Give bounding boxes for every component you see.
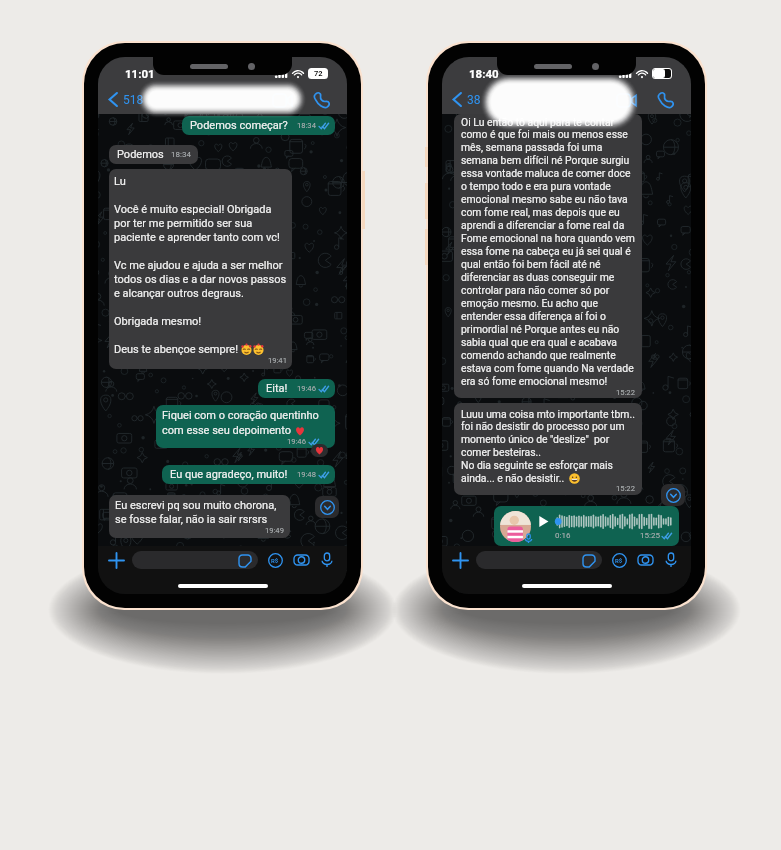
staticText: 19:41 bbox=[268, 356, 287, 365]
staticText: 19:46 bbox=[297, 384, 316, 393]
staticText: Eita! bbox=[266, 382, 288, 395]
staticText: com esse seu depoimento bbox=[162, 424, 291, 437]
button[interactable]: Attach bbox=[450, 550, 470, 570]
button[interactable]: Scroll to bottom bbox=[315, 496, 339, 518]
staticText: Obrigada mesmo! bbox=[114, 315, 202, 328]
staticText: 38 bbox=[467, 93, 481, 107]
staticText: 15:25 bbox=[640, 531, 660, 540]
staticText: 19:49 bbox=[265, 526, 284, 535]
staticText: R$ bbox=[615, 557, 623, 564]
staticText: Deus te abençoe sempre! bbox=[114, 343, 238, 356]
staticText: Vc me ajudou e ajuda a ser melhor todos … bbox=[114, 259, 287, 300]
staticText: ainda... e não desistir.. bbox=[461, 472, 565, 484]
button[interactable] bbox=[132, 551, 258, 569]
staticText: 18:40 bbox=[469, 67, 499, 80]
staticText: Você é muito especial! Obrigada por ter … bbox=[114, 203, 280, 244]
button[interactable]: Voice message bbox=[318, 551, 336, 569]
button[interactable]: Video call bbox=[614, 88, 638, 112]
staticText: 0:16 bbox=[555, 531, 571, 540]
button[interactable]: Attach bbox=[106, 550, 126, 570]
button[interactable]: Payments bbox=[266, 551, 284, 569]
staticText: Eu escrevi pq sou muito chorona, se foss… bbox=[115, 499, 284, 526]
staticText: Lu bbox=[114, 175, 126, 188]
staticText: 18:34 bbox=[297, 121, 316, 130]
staticText: 518 bbox=[123, 93, 144, 107]
staticText: 11:01 bbox=[125, 67, 155, 80]
staticText: 18:34 bbox=[171, 150, 191, 159]
button[interactable]: 518 bbox=[98, 92, 150, 107]
button[interactable]: Camera bbox=[292, 551, 310, 569]
staticText: 19:46 bbox=[287, 437, 306, 446]
button[interactable]: 38 bbox=[442, 92, 487, 107]
button[interactable]: Camera bbox=[636, 551, 654, 569]
staticText: R$ bbox=[271, 557, 279, 564]
staticText: Podemos começar? bbox=[190, 119, 288, 132]
staticText: 15:22 bbox=[616, 388, 635, 397]
staticText: Oi Lu então tô aqui para te contar como … bbox=[461, 116, 635, 388]
staticText: 19:48 bbox=[297, 470, 316, 479]
button[interactable]: Voice call bbox=[310, 88, 334, 112]
button[interactable]: Voice message bbox=[662, 551, 680, 569]
staticText: Luuu uma coisa mto importante tbm.. foi … bbox=[461, 408, 635, 472]
staticText: 15:22 bbox=[616, 484, 635, 493]
button[interactable]: Payments bbox=[610, 551, 628, 569]
button[interactable]: Video call bbox=[270, 88, 294, 112]
button[interactable]: Scroll to bottom bbox=[661, 484, 685, 506]
button[interactable] bbox=[476, 551, 602, 569]
staticText: Eu que agradeço, muito! bbox=[170, 468, 288, 481]
button[interactable]: Voice call bbox=[654, 88, 678, 112]
staticText: Podemos bbox=[117, 148, 164, 161]
staticText: Fiquei com o coração quentinho bbox=[162, 409, 319, 422]
staticText: 72 bbox=[314, 69, 323, 78]
